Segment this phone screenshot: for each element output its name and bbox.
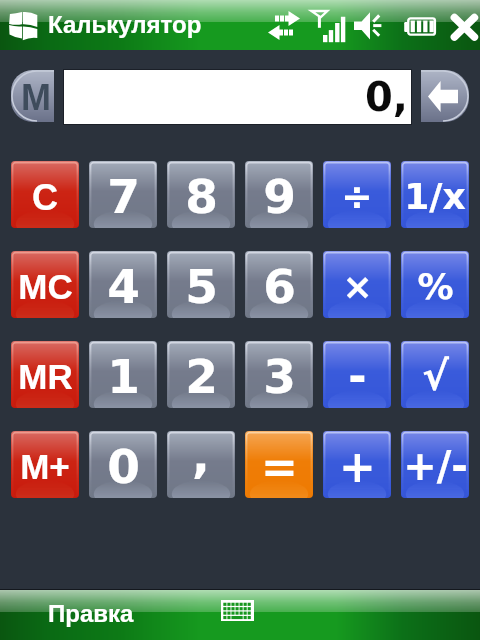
- button[interactable]: √: [401, 341, 469, 408]
- staticText: 0: [107, 439, 140, 494]
- button[interactable]: 1: [89, 341, 157, 408]
- staticText: 2: [185, 349, 218, 404]
- staticText: ,: [192, 431, 210, 483]
- button[interactable]: +: [323, 431, 391, 498]
- button[interactable]: 9: [245, 161, 313, 228]
- button[interactable]: Backspace: [421, 70, 469, 122]
- staticText: √: [422, 353, 449, 400]
- staticText: 9: [263, 169, 296, 224]
- button[interactable]: Keyboard: [205, 585, 269, 635]
- button[interactable]: 2: [167, 341, 235, 408]
- button[interactable]: M+: [11, 431, 79, 498]
- button[interactable]: ÷: [323, 161, 391, 228]
- button[interactable]: =: [245, 431, 313, 498]
- staticText: MC: [18, 267, 73, 306]
- button[interactable]: 1/x: [401, 161, 469, 228]
- staticText: 5: [185, 259, 218, 314]
- staticText: 1/x: [404, 176, 466, 218]
- staticText: Правка: [48, 600, 134, 627]
- button[interactable]: 7: [89, 161, 157, 228]
- button[interactable]: 5: [167, 251, 235, 318]
- button[interactable]: 3: [245, 341, 313, 408]
- other: Signal strength: [311, 10, 345, 43]
- staticText: 4: [107, 259, 140, 314]
- button[interactable]: +/-: [401, 431, 469, 498]
- button[interactable]: 6: [245, 251, 313, 318]
- button[interactable]: ×: [323, 251, 391, 318]
- button[interactable]: %: [401, 251, 469, 318]
- staticText: Калькулятор: [48, 11, 202, 38]
- staticText: +: [339, 441, 376, 492]
- button[interactable]: C: [11, 161, 79, 228]
- staticText: %: [417, 266, 454, 308]
- other: Battery: [404, 17, 437, 36]
- button[interactable]: 4: [89, 251, 157, 318]
- other: Sync: [268, 10, 300, 41]
- button[interactable]: -: [323, 341, 391, 408]
- staticText: ×: [342, 266, 373, 308]
- button[interactable]: 0: [89, 431, 157, 498]
- staticText: MR: [18, 357, 73, 396]
- other: Volume: [354, 12, 382, 40]
- button[interactable]: MC: [11, 251, 79, 318]
- staticText: =: [261, 441, 298, 492]
- staticText: 0,: [365, 74, 409, 121]
- staticText: 7: [107, 169, 140, 224]
- staticText: 3: [263, 349, 296, 404]
- staticText: 8: [185, 169, 218, 224]
- button[interactable]: MR: [11, 341, 79, 408]
- staticText: M: [21, 77, 51, 117]
- staticText: +/-: [403, 443, 468, 490]
- staticText: 1: [107, 349, 140, 404]
- staticText: C: [32, 177, 58, 217]
- staticText: ÷: [341, 175, 373, 219]
- button[interactable]: 8: [167, 161, 235, 228]
- staticText: -: [348, 351, 367, 402]
- button[interactable]: Memory: [11, 70, 54, 122]
- button[interactable]: Правка: [20, 590, 170, 640]
- staticText: M+: [20, 447, 70, 486]
- button[interactable]: ,: [167, 431, 235, 498]
- staticText: 6: [263, 259, 296, 314]
- button[interactable]: Close: [446, 9, 480, 43]
